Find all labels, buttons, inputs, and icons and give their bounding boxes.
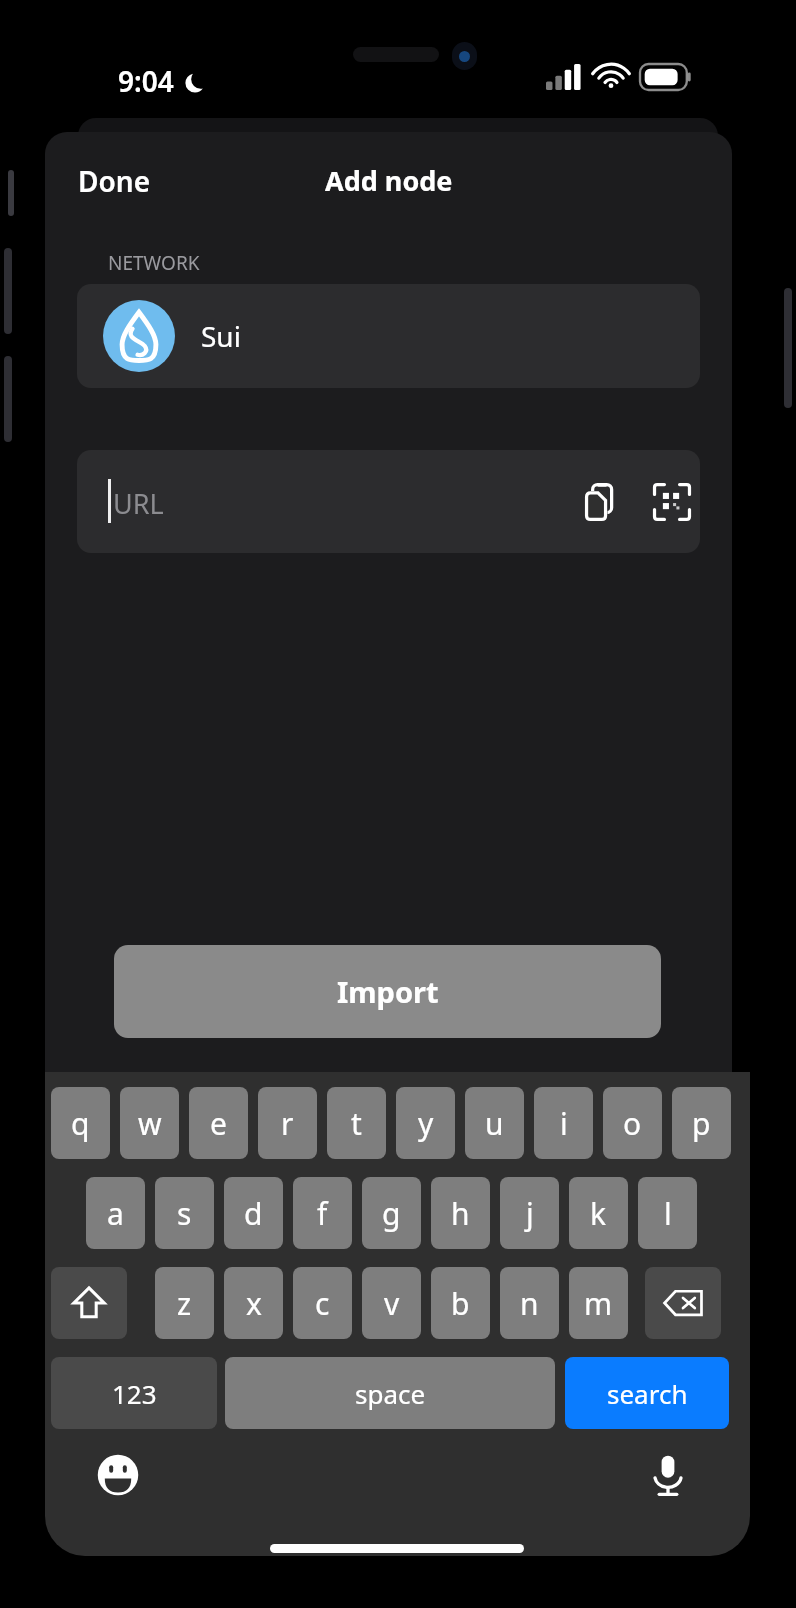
button[interactable]: Voice input — [635, 1442, 701, 1508]
button[interactable]: q — [51, 1087, 110, 1159]
staticText: Add node — [325, 162, 453, 199]
button[interactable]: p — [672, 1087, 731, 1159]
staticText: Import — [337, 972, 439, 1011]
staticText: space — [355, 1376, 426, 1411]
button[interactable]: f — [293, 1177, 352, 1249]
button[interactable]: Emoji — [85, 1442, 151, 1508]
button[interactable]: k — [569, 1177, 628, 1249]
staticText: a — [107, 1193, 124, 1234]
staticText: Sui — [201, 317, 241, 355]
staticText: g — [382, 1193, 401, 1234]
staticText: i — [560, 1103, 568, 1144]
button[interactable]: x — [224, 1267, 283, 1339]
button[interactable]: Import — [114, 945, 661, 1038]
staticText: u — [485, 1103, 504, 1144]
staticText: z — [177, 1283, 192, 1324]
button[interactable]: a — [86, 1177, 145, 1249]
staticText: search — [607, 1376, 688, 1411]
button[interactable]: w — [120, 1087, 179, 1159]
button[interactable]: 123 — [51, 1357, 217, 1429]
button[interactable]: b — [431, 1267, 490, 1339]
button[interactable]: j — [500, 1177, 559, 1249]
button[interactable]: s — [155, 1177, 214, 1249]
staticText: 123 — [112, 1376, 157, 1411]
staticText: j — [526, 1193, 534, 1234]
staticText: n — [520, 1283, 539, 1324]
staticText: x — [246, 1283, 262, 1324]
button[interactable]: c — [293, 1267, 352, 1339]
button[interactable]: v — [362, 1267, 421, 1339]
staticText: k — [590, 1193, 607, 1234]
staticText: v — [384, 1283, 400, 1324]
button[interactable]: Done — [55, 154, 205, 208]
button[interactable]: search — [565, 1357, 729, 1429]
button[interactable]: e — [189, 1087, 248, 1159]
staticText: m — [584, 1283, 613, 1324]
button[interactable]: i — [534, 1087, 593, 1159]
button[interactable]: l — [638, 1177, 697, 1249]
staticText: p — [692, 1103, 711, 1144]
staticText: s — [177, 1193, 192, 1234]
button[interactable]: URL — [77, 450, 700, 553]
button[interactable]: y — [396, 1087, 455, 1159]
staticText: w — [138, 1103, 162, 1144]
staticText: t — [351, 1103, 362, 1144]
staticText: Done — [78, 162, 151, 200]
button[interactable]: u — [465, 1087, 524, 1159]
button[interactable]: Shift — [51, 1267, 127, 1339]
staticText: d — [244, 1193, 263, 1234]
button[interactable]: Backspace — [645, 1267, 721, 1339]
staticText: c — [315, 1283, 330, 1324]
staticText: f — [317, 1193, 328, 1234]
button[interactable]: h — [431, 1177, 490, 1249]
staticText: e — [210, 1103, 227, 1144]
staticText: 9:04 — [118, 62, 174, 100]
button[interactable]: t — [327, 1087, 386, 1159]
button[interactable]: Sui — [77, 284, 700, 388]
button[interactable]: space — [225, 1357, 555, 1429]
button[interactable]: m — [569, 1267, 628, 1339]
button[interactable]: d — [224, 1177, 283, 1249]
staticText: NETWORK — [108, 250, 200, 276]
staticText: y — [418, 1103, 434, 1144]
button[interactable]: z — [155, 1267, 214, 1339]
button[interactable]: Scan QR code — [642, 472, 700, 532]
button[interactable]: Paste from clipboard — [571, 472, 631, 532]
staticText: o — [623, 1103, 642, 1144]
button[interactable]: n — [500, 1267, 559, 1339]
staticText: r — [281, 1103, 294, 1144]
button[interactable]: r — [258, 1087, 317, 1159]
staticText: b — [451, 1283, 470, 1324]
staticText: q — [71, 1103, 90, 1144]
staticText: h — [451, 1193, 470, 1234]
button[interactable]: o — [603, 1087, 662, 1159]
staticText: URL — [113, 485, 164, 522]
button[interactable]: g — [362, 1177, 421, 1249]
staticText: l — [664, 1193, 672, 1234]
